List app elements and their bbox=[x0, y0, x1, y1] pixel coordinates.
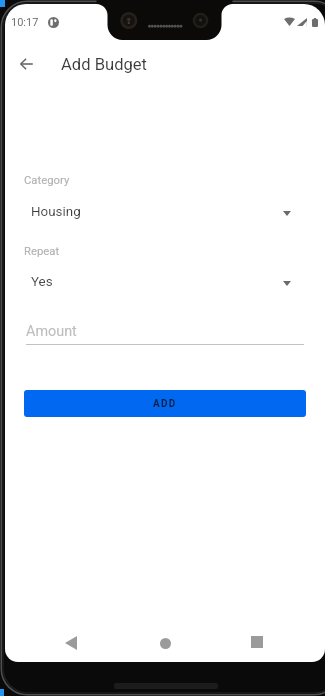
button[interactable]: Home bbox=[143, 621, 187, 662]
staticText: Amount bbox=[26, 323, 77, 340]
button[interactable]: Housing bbox=[19, 198, 300, 224]
staticText: Category bbox=[24, 174, 70, 187]
button[interactable]: Back bbox=[49, 621, 93, 662]
staticText: Repeat bbox=[24, 245, 60, 258]
staticText: ADD bbox=[153, 398, 177, 410]
button[interactable]: Amount bbox=[26, 323, 304, 345]
staticText: Add Budget bbox=[61, 55, 148, 74]
button[interactable]: Recent apps bbox=[235, 620, 279, 662]
staticText: Housing bbox=[31, 204, 81, 220]
button[interactable]: Navigate up bbox=[8, 45, 45, 82]
button[interactable]: Yes bbox=[19, 268, 300, 294]
staticText: Yes bbox=[31, 274, 53, 290]
staticText: 10:17 bbox=[11, 16, 39, 29]
button[interactable]: ADD bbox=[24, 390, 306, 417]
